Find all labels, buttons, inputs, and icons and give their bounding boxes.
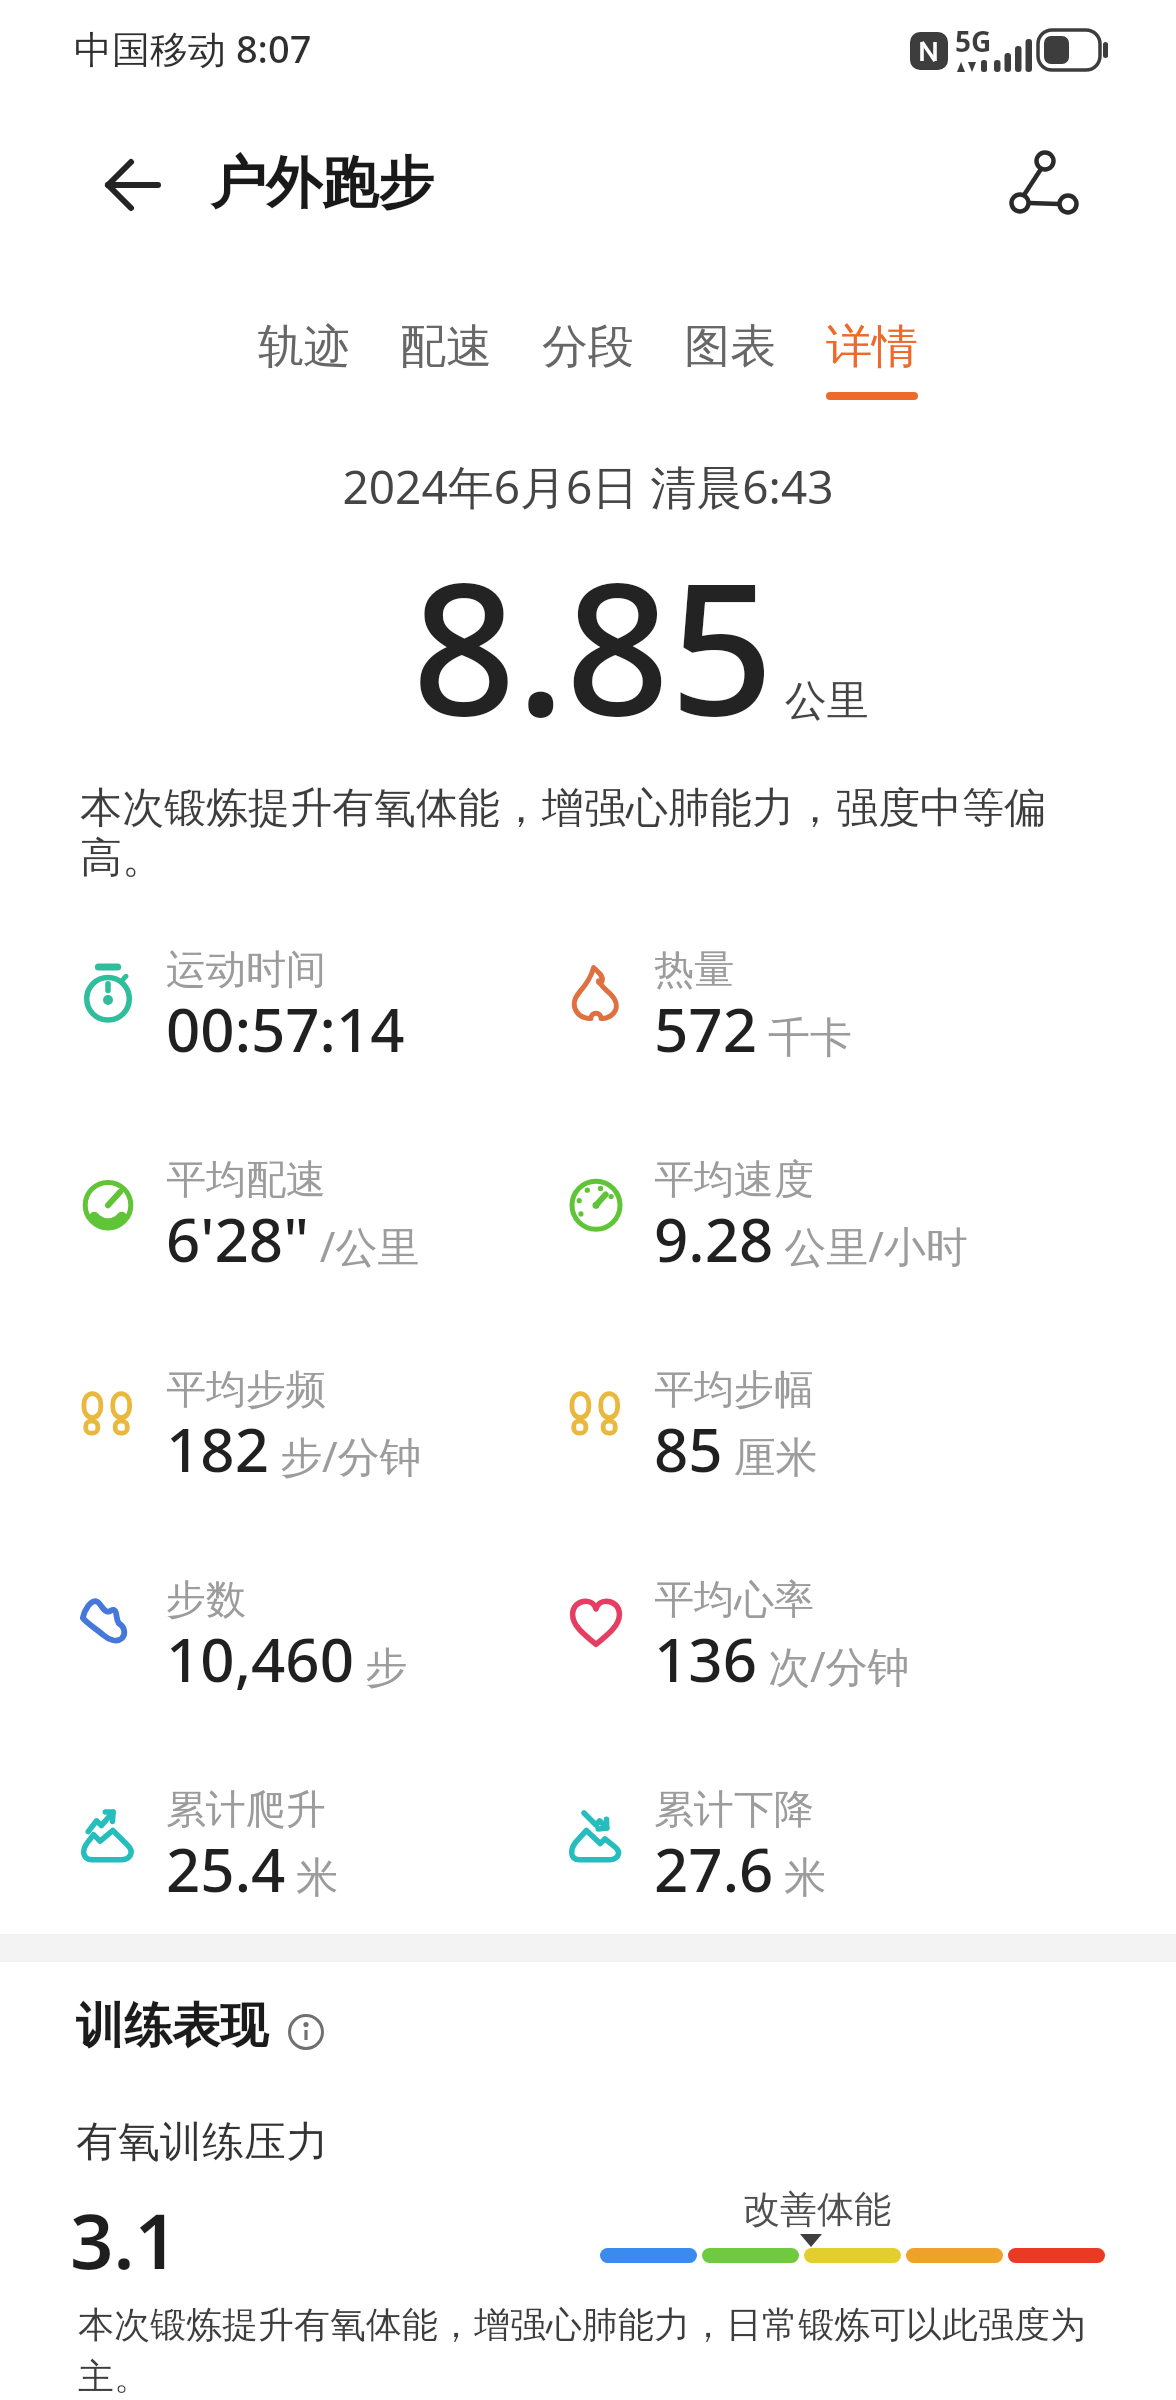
staticText: 8.85 公里: [412, 520, 869, 768]
staticText: 本次锻炼提升有氧体能，增强心肺能力，日常锻炼可以此强度为主。: [78, 2302, 1108, 2400]
staticText: 热量: [654, 944, 734, 994]
staticText: 10,460 步: [166, 1618, 407, 1700]
staticText: 图表: [684, 318, 776, 376]
staticText: 平均步频: [166, 1364, 326, 1414]
staticText: 平均速度: [654, 1154, 814, 1204]
staticText: 训练表现: [76, 1996, 268, 2056]
staticText: 分段: [542, 318, 634, 376]
staticText: 6'28" /公里: [166, 1198, 420, 1280]
button[interactable]: 详情: [826, 318, 918, 400]
button[interactable]: [286, 2012, 326, 2052]
staticText: 00:57:14: [166, 988, 405, 1070]
staticText: 改善体能: [743, 2186, 891, 2233]
button[interactable]: 配速: [400, 318, 492, 392]
staticText: 步数: [166, 1574, 246, 1624]
button[interactable]: [1000, 140, 1090, 224]
staticText: 136 次/分钟: [654, 1618, 910, 1700]
staticText: 配速: [400, 318, 492, 376]
staticText: 中国移动 8:07: [74, 22, 312, 74]
staticText: 平均步幅: [654, 1364, 814, 1414]
staticText: 85 厘米: [654, 1408, 818, 1490]
staticText: 累计下降: [654, 1784, 814, 1834]
staticText: 2024年6月6日 清晨6:43: [0, 455, 1176, 518]
staticText: 平均心率: [654, 1574, 814, 1624]
staticText: 有氧训练压力: [76, 2116, 328, 2169]
staticText: 轨迹: [258, 318, 350, 376]
button[interactable]: 轨迹: [258, 318, 350, 392]
staticText: 27.6 米: [654, 1828, 827, 1910]
staticText: 累计爬升: [166, 1784, 326, 1834]
staticText: 25.4 米: [166, 1828, 339, 1910]
button[interactable]: 分段: [542, 318, 634, 392]
staticText: 182 步/分钟: [166, 1408, 422, 1490]
button[interactable]: 图表: [684, 318, 776, 392]
staticText: 户外跑步: [210, 148, 434, 219]
staticText: 本次锻炼提升有氧体能，增强心肺能力，强度中等偏高。: [80, 782, 1070, 885]
staticText: 平均配速: [166, 1154, 326, 1204]
staticText: 详情: [826, 318, 918, 376]
staticText: 运动时间: [166, 944, 326, 994]
staticText: 572 千卡: [654, 988, 852, 1070]
staticText: 3.1: [70, 2188, 178, 2292]
button[interactable]: [92, 152, 172, 220]
staticText: 5G: [955, 22, 992, 60]
staticText: 9.28 公里/小时: [654, 1198, 968, 1280]
